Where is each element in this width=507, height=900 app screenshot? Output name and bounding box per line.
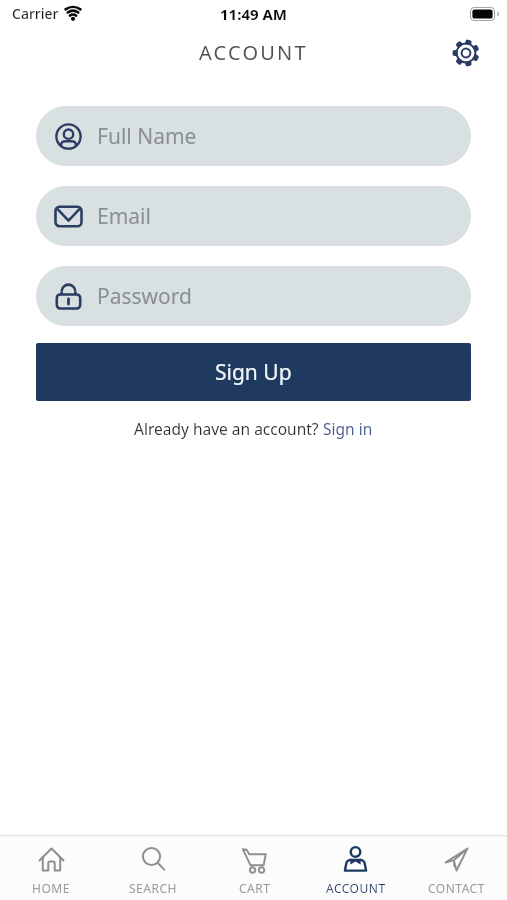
staticText: SEARCH: [129, 880, 177, 896]
staticText: ACCOUNT: [326, 880, 386, 896]
button[interactable]: Email: [36, 186, 471, 246]
staticText: Carrier: [12, 4, 59, 23]
button[interactable]: HOME: [0, 836, 102, 900]
staticText: 11:49 AM: [220, 4, 287, 24]
button[interactable]: Sign Up: [36, 343, 471, 401]
button[interactable]: Sign in: [323, 418, 373, 439]
staticText: CONTACT: [428, 880, 485, 896]
button[interactable]: CONTACT: [406, 836, 507, 900]
button[interactable]: ACCOUNT: [305, 836, 406, 900]
staticText: Full Name: [97, 122, 197, 151]
staticText: CART: [239, 880, 271, 896]
staticText: Sign Up: [215, 358, 292, 387]
staticText: HOME: [32, 880, 70, 896]
staticText: Already have an account?: [134, 418, 323, 439]
staticText: Password: [97, 282, 192, 311]
button[interactable]: Full Name: [36, 106, 471, 166]
staticText: ACCOUNT: [199, 39, 308, 66]
staticText: Email: [97, 202, 151, 231]
staticText: Sign in: [323, 418, 373, 439]
button[interactable]: SEARCH: [102, 836, 204, 900]
button[interactable]: CART: [204, 836, 305, 900]
button[interactable]: Password: [36, 266, 471, 326]
button[interactable]: [450, 37, 482, 69]
